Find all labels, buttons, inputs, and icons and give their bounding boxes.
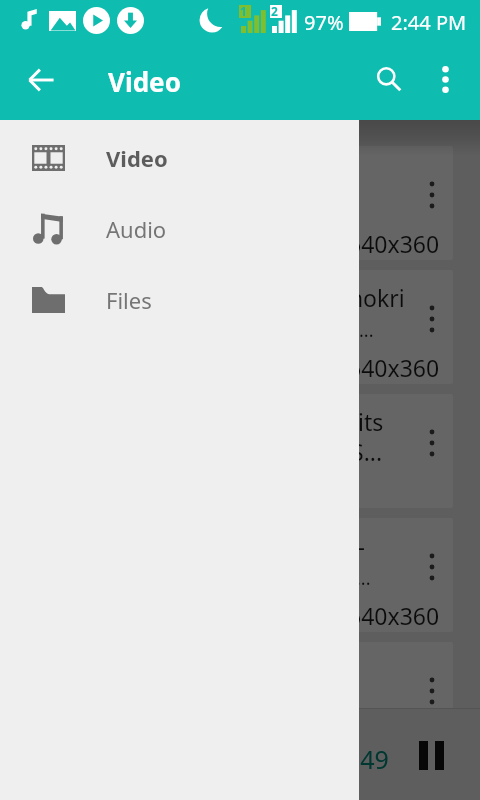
button[interactable]: Pause — [407, 731, 455, 779]
button[interactable]: New Video Clip — [8, 642, 453, 724]
button[interactable]: Tere Bina Jeena - — [8, 518, 453, 632]
staticText: ... — [356, 566, 371, 591]
staticText: 640x360 — [348, 228, 440, 259]
button[interactable]: More options — [418, 52, 472, 106]
staticText: 03:49 — [325, 742, 389, 776]
staticText: Video — [108, 64, 181, 99]
staticText: Audio — [106, 214, 167, 244]
button[interactable]: Sample Video — [8, 146, 453, 260]
button[interactable]: Audio — [0, 193, 359, 264]
staticText: Tere Bina Jeena - — [186, 530, 371, 561]
staticText: Chal Mere Bhai Chokri — [165, 282, 405, 313]
button[interactable]: Top Hit Songs 2018 Hits — [8, 394, 453, 508]
staticText: 640x360 — [348, 600, 440, 631]
staticText: Files — [106, 285, 152, 315]
staticText: 97% — [304, 9, 344, 36]
staticText: Top Hit Songs 2018 Hits — [128, 406, 384, 437]
staticText: Video — [106, 143, 168, 173]
staticText: 640x360 — [348, 352, 440, 383]
staticText: S... — [351, 436, 383, 467]
button[interactable]: Chal Mere Bhai Chokri — [8, 270, 453, 384]
button[interactable]: Back — [13, 52, 68, 107]
staticText: ... — [359, 318, 374, 343]
button[interactable]: Search — [362, 52, 416, 106]
button[interactable]: Video — [0, 122, 359, 193]
staticText: 1 — [240, 3, 247, 19]
staticText: 2 — [271, 3, 278, 19]
button[interactable]: Files — [0, 264, 359, 335]
staticText: 2:44 PM — [391, 9, 467, 36]
